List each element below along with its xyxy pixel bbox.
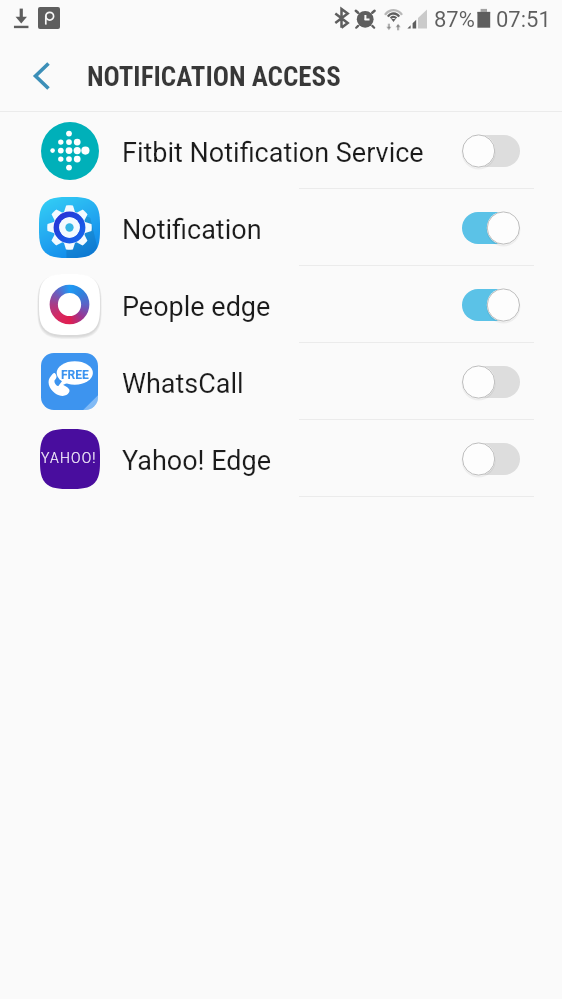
button[interactable]: Off bbox=[462, 437, 520, 481]
staticText: WhatsCall bbox=[122, 368, 244, 400]
button[interactable]: People edge bbox=[0, 266, 562, 343]
staticText: 87% bbox=[434, 7, 475, 33]
button[interactable]: On bbox=[462, 206, 520, 250]
button[interactable]: YAHOO! bbox=[0, 420, 562, 497]
button[interactable]: Off bbox=[462, 360, 520, 404]
staticText: 07:51 bbox=[496, 7, 551, 33]
staticText: Fitbit Notification Service bbox=[122, 137, 424, 169]
button[interactable]: Navigate up bbox=[20, 54, 64, 98]
staticText: Yahoo! Edge bbox=[122, 445, 272, 477]
button[interactable]: Notification bbox=[0, 189, 562, 266]
button[interactable]: On bbox=[462, 283, 520, 327]
staticText: Notification bbox=[122, 214, 262, 246]
button[interactable]: FREE bbox=[0, 343, 562, 420]
staticText: FREE bbox=[61, 368, 89, 382]
staticText: NOTIFICATION ACCESS bbox=[87, 61, 341, 93]
button[interactable]: Fitbit Notification Service bbox=[0, 112, 562, 189]
staticText: YAHOO! bbox=[41, 450, 97, 466]
staticText: People edge bbox=[122, 291, 271, 323]
button[interactable]: Off bbox=[462, 129, 520, 173]
